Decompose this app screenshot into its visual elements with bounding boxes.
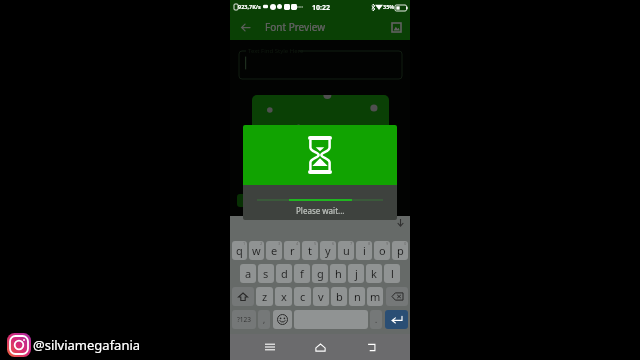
button[interactable]: s: [258, 264, 274, 283]
staticText: e: [271, 243, 278, 258]
button[interactable]: [386, 287, 408, 306]
staticText: i: [363, 243, 366, 258]
button[interactable]: r: [284, 241, 300, 260]
staticText: 9: [386, 241, 389, 246]
staticText: o: [379, 243, 386, 258]
button[interactable]: Font image: [387, 18, 405, 36]
button[interactable]: Home: [309, 336, 331, 358]
button[interactable]: f: [294, 264, 310, 283]
staticText: 1: [243, 241, 246, 246]
staticText: v: [318, 289, 324, 304]
button[interactable]: y: [320, 241, 336, 260]
staticText: 6: [332, 241, 335, 246]
staticText: Please wait...: [296, 205, 345, 216]
button[interactable]: Enter: [385, 310, 408, 329]
staticText: k: [371, 266, 377, 281]
button[interactable]: ,: [258, 310, 270, 329]
staticText: x: [281, 289, 287, 304]
staticText: a: [245, 266, 252, 281]
button[interactable]: c: [294, 287, 311, 306]
button[interactable]: [273, 310, 292, 329]
button[interactable]: q: [232, 241, 247, 260]
staticText: m: [370, 289, 381, 304]
button[interactable]: [232, 287, 254, 306]
staticText: 10:22: [312, 3, 330, 13]
button[interactable]: Back: [234, 16, 256, 38]
staticText: l: [391, 266, 394, 281]
button[interactable]: d: [276, 264, 292, 283]
staticText: 2: [260, 241, 263, 246]
staticText: j: [355, 266, 358, 281]
button[interactable]: v: [313, 287, 329, 306]
button[interactable]: l: [384, 264, 400, 283]
staticText: z: [262, 289, 268, 304]
staticText: u: [343, 243, 350, 258]
button[interactable]: i: [356, 241, 372, 260]
staticText: b: [336, 289, 343, 304]
button[interactable]: h: [330, 264, 346, 283]
button[interactable]: b: [331, 287, 347, 306]
staticText: Text Find Style Here: [248, 47, 304, 55]
staticText: .: [375, 314, 378, 325]
staticText: 3: [278, 241, 281, 246]
button[interactable]: o: [374, 241, 390, 260]
staticText: q: [236, 243, 243, 258]
button[interactable]: x: [275, 287, 292, 306]
button[interactable]: z: [256, 287, 273, 306]
staticText: 923,7K/s: [238, 3, 261, 10]
button[interactable]: k: [366, 264, 382, 283]
button[interactable]: .: [370, 310, 382, 329]
button[interactable]: n: [349, 287, 365, 306]
staticText: 4: [296, 241, 299, 246]
button[interactable]: e: [266, 241, 282, 260]
button[interactable]: ?123: [232, 310, 256, 329]
staticText: 35%: [383, 3, 395, 10]
button[interactable]: [237, 194, 277, 207]
button[interactable]: a: [240, 264, 256, 283]
staticText: ,: [263, 314, 266, 325]
button[interactable]: u: [338, 241, 354, 260]
staticText: f: [300, 266, 304, 281]
button[interactable]: m: [367, 287, 383, 306]
staticText: t: [308, 243, 312, 258]
staticText: y: [325, 243, 331, 258]
staticText: 7: [350, 241, 353, 246]
button[interactable]: Text Find Style Here: [239, 47, 402, 79]
staticText: w: [252, 243, 261, 258]
staticText: n: [354, 289, 361, 304]
button[interactable]: j: [348, 264, 364, 283]
staticText: c: [300, 289, 306, 304]
staticText: s: [263, 266, 269, 281]
button[interactable]: Back: [360, 336, 382, 358]
button[interactable]: g: [312, 264, 328, 283]
staticText: 8: [368, 241, 371, 246]
staticText: 5: [314, 241, 317, 246]
staticText: @silviamegafania: [33, 336, 141, 354]
button[interactable]: Recents: [259, 336, 281, 358]
button[interactable]: [252, 95, 389, 205]
staticText: d: [281, 266, 288, 281]
button[interactable]: Hide keyboard: [394, 217, 406, 229]
staticText: r: [290, 243, 295, 258]
staticText: h: [335, 266, 342, 281]
staticText: Font Preview: [265, 20, 326, 34]
staticText: g: [317, 266, 324, 281]
staticText: ?123: [237, 315, 251, 324]
button[interactable]: t: [302, 241, 318, 260]
button[interactable]: p: [392, 241, 408, 260]
button[interactable]: w: [249, 241, 264, 260]
staticText: 0: [404, 241, 407, 246]
staticText: p: [397, 243, 404, 258]
